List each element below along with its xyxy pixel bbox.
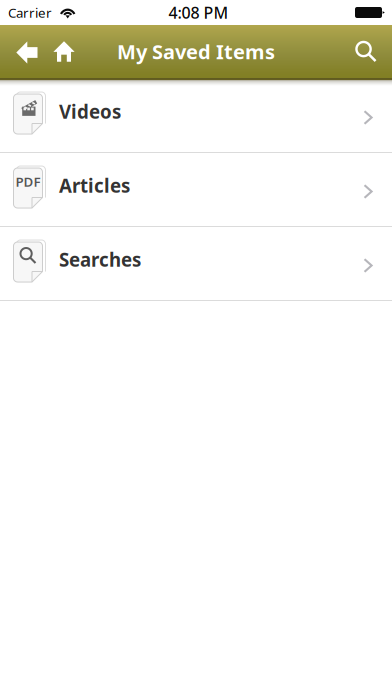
staticText: 4:08 PM — [168, 2, 228, 23]
staticText: Articles — [59, 173, 130, 198]
button[interactable]: Search — [340, 25, 392, 78]
staticText: PDF — [15, 173, 40, 190]
button[interactable]: Videos — [0, 79, 392, 153]
staticText: Carrier — [8, 4, 52, 21]
staticText: My Saved Items — [117, 38, 275, 65]
button[interactable]: Searches — [0, 227, 392, 301]
button[interactable]: Back — [8, 25, 46, 78]
staticText: Searches — [59, 247, 141, 272]
button[interactable]: Home — [46, 25, 82, 78]
staticText: Videos — [59, 99, 121, 124]
button[interactable]: PDF — [0, 153, 392, 227]
